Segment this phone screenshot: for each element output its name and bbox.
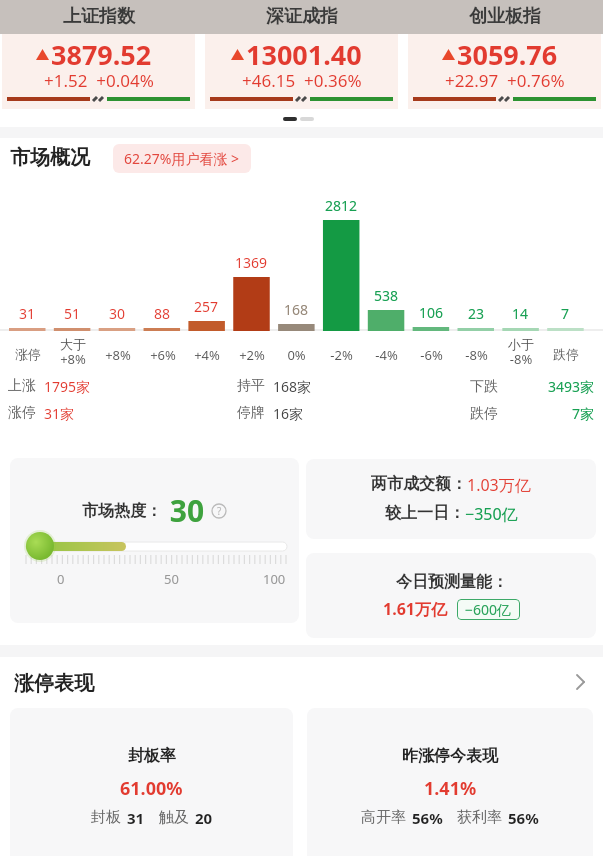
button[interactable]: 今日预测量能： bbox=[306, 553, 596, 638]
staticText: ? bbox=[217, 504, 222, 518]
button[interactable] bbox=[576, 674, 586, 690]
staticText: +22.97 +0.76% bbox=[445, 69, 565, 92]
staticText: 小于 -8% bbox=[508, 336, 534, 368]
staticText: 2812 bbox=[325, 196, 358, 215]
staticText: 1.03万亿 bbox=[467, 474, 531, 496]
staticText: 100 bbox=[263, 570, 286, 588]
staticText: 31 bbox=[127, 808, 145, 828]
staticText: 257 bbox=[194, 297, 219, 316]
staticText: 跌停 bbox=[553, 346, 579, 362]
staticText: 3879.52 bbox=[51, 36, 152, 73]
button[interactable]: 封板率 bbox=[10, 708, 293, 856]
staticText: 7 bbox=[561, 304, 570, 323]
staticText: -4% bbox=[375, 346, 398, 364]
staticText: 62.27%用户看涨 > bbox=[124, 149, 240, 168]
staticText: 市场概况 bbox=[10, 145, 90, 170]
staticText: 30 bbox=[109, 304, 126, 323]
staticText: 下跌 bbox=[470, 378, 498, 396]
staticText: +6% bbox=[150, 346, 176, 364]
button[interactable]: 3879.52 bbox=[2, 0, 195, 109]
staticText: 56% bbox=[412, 808, 443, 828]
staticText: 封板率 bbox=[128, 746, 176, 766]
button[interactable]: 13001.40 bbox=[205, 0, 398, 109]
staticText: +8% bbox=[105, 346, 131, 364]
staticText: 上证指数 bbox=[63, 5, 135, 28]
staticText: 7家 bbox=[572, 404, 595, 423]
staticText: -8% bbox=[465, 346, 488, 364]
staticText: 大于 +8% bbox=[60, 336, 86, 368]
staticText: 13001.40 bbox=[246, 36, 362, 73]
staticText: 538 bbox=[374, 286, 399, 305]
staticText: 1.61万亿 bbox=[383, 598, 447, 620]
staticText: 两市成交额： bbox=[371, 474, 467, 494]
staticText: 上涨 bbox=[8, 377, 36, 395]
staticText: 昨涨停今表现 bbox=[402, 746, 498, 766]
staticText: -6% bbox=[420, 346, 443, 364]
staticText: 106 bbox=[419, 303, 444, 322]
staticText: 跌停 bbox=[470, 405, 498, 423]
staticText: 31家 bbox=[44, 404, 75, 423]
staticText: 3493家 bbox=[548, 377, 595, 396]
staticText: 168家 bbox=[273, 377, 312, 396]
button[interactable]: 市场热度： bbox=[10, 458, 299, 623]
staticText: +4% bbox=[194, 346, 220, 364]
staticText: 20 bbox=[195, 808, 213, 828]
staticText: 168 bbox=[284, 300, 309, 319]
staticText: 持平 bbox=[237, 377, 265, 395]
staticText: 3059.76 bbox=[457, 36, 558, 73]
button[interactable]: 两市成交额： bbox=[306, 459, 596, 539]
button[interactable]: 3059.76 bbox=[408, 0, 601, 109]
staticText: 88 bbox=[154, 304, 171, 323]
staticText: +2% bbox=[239, 346, 265, 364]
staticText: 16家 bbox=[273, 404, 304, 423]
staticText: 触及 bbox=[159, 808, 189, 827]
staticText: 创业板指 bbox=[469, 5, 541, 28]
staticText: 获利率 bbox=[457, 808, 502, 827]
staticText: +1.52 +0.04% bbox=[44, 69, 154, 92]
staticText: 高开率 bbox=[361, 808, 406, 827]
staticText: 23 bbox=[468, 304, 485, 323]
staticText: 今日预测量能： bbox=[396, 572, 508, 592]
staticText: 市场热度： bbox=[82, 501, 162, 521]
staticText: 较上一日： bbox=[385, 503, 465, 523]
staticText: −350亿 bbox=[465, 503, 518, 525]
staticText: 61.00% bbox=[120, 776, 183, 801]
staticText: 50 bbox=[164, 570, 179, 588]
staticText: +46.15 +0.36% bbox=[242, 69, 362, 92]
staticText: 0% bbox=[287, 346, 306, 364]
staticText: -2% bbox=[330, 346, 353, 364]
staticText: 51 bbox=[64, 304, 81, 323]
staticText: 停牌 bbox=[237, 404, 265, 422]
staticText: 1369 bbox=[235, 253, 268, 272]
staticText: 涨停表现 bbox=[14, 671, 94, 696]
staticText: −600亿 bbox=[465, 600, 512, 619]
staticText: 封板 bbox=[91, 808, 121, 827]
staticText: 1.41% bbox=[424, 776, 477, 801]
staticText: 56% bbox=[508, 808, 539, 828]
staticText: 涨停 bbox=[8, 404, 36, 422]
staticText: 1795家 bbox=[44, 377, 91, 396]
staticText: 深证成指 bbox=[266, 5, 338, 28]
staticText: 0 bbox=[57, 570, 65, 588]
staticText: 31 bbox=[19, 304, 36, 323]
button[interactable]: 昨涨停今表现 bbox=[307, 708, 593, 856]
staticText: 14 bbox=[512, 304, 529, 323]
button[interactable]: 62.27%用户看涨 > bbox=[113, 144, 251, 173]
staticText: 30 bbox=[162, 490, 205, 531]
staticText: 涨停 bbox=[15, 346, 41, 362]
